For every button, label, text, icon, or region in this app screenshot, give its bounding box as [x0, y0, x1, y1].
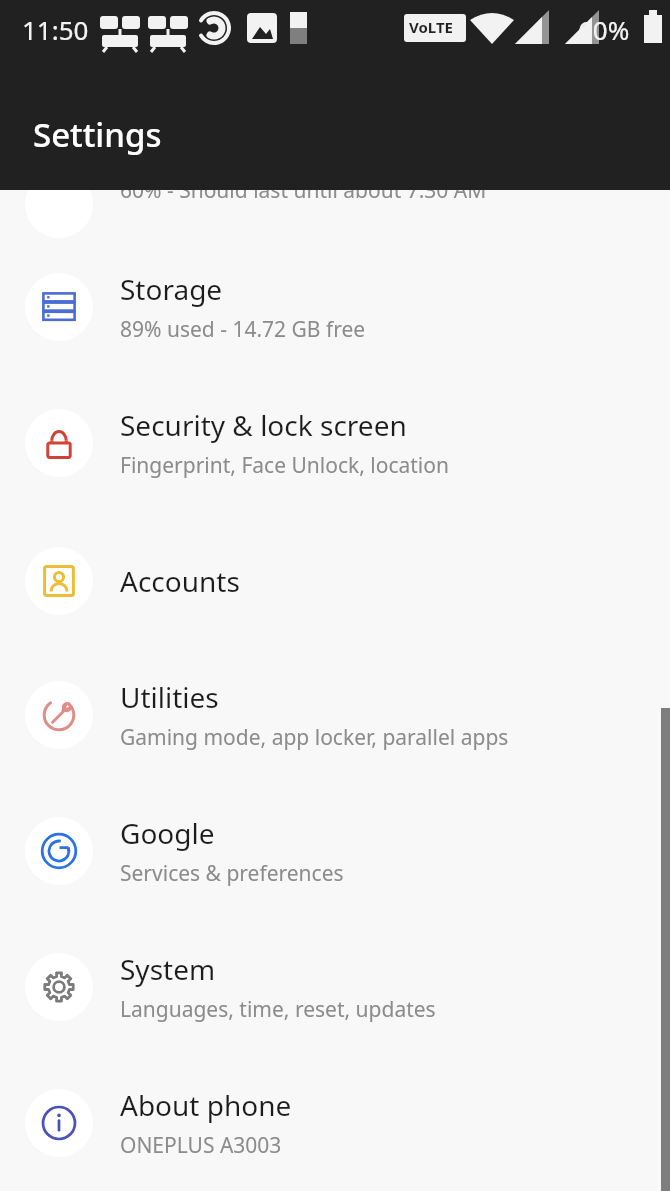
staticText: ONEPLUS A3003 — [120, 1131, 282, 1160]
staticText: 89% used - 14.72 GB free — [120, 315, 366, 344]
staticText: 60% — [578, 12, 630, 47]
staticText: Security & lock screen — [120, 406, 407, 444]
staticText: Accounts — [120, 562, 240, 600]
staticText: System — [120, 950, 216, 988]
other: Storage — [39, 287, 79, 327]
staticText: Gaming mode, app locker, parallel apps — [120, 723, 509, 752]
staticText: Fingerprint, Face Unlock, location — [120, 451, 449, 480]
staticText: About phone — [120, 1086, 292, 1124]
other: Utilities — [39, 695, 79, 735]
other: Accounts — [39, 561, 79, 601]
staticText: VoLTE — [409, 17, 453, 37]
other: About phone — [39, 1103, 79, 1143]
button[interactable]: Google — [0, 784, 670, 918]
button[interactable]: Accounts — [0, 514, 670, 648]
staticText: Utilities — [120, 678, 219, 716]
staticText: 60% - Should last until about 7:30 AM — [120, 176, 487, 205]
staticText: Services & preferences — [120, 859, 344, 888]
staticText: Languages, time, reset, updates — [120, 995, 436, 1024]
button[interactable]: Utilities — [0, 648, 670, 782]
staticText: 11:50 — [22, 12, 89, 47]
staticText: Google — [120, 814, 215, 852]
other: Security and lock screen — [39, 423, 79, 463]
other: System — [39, 967, 79, 1007]
button[interactable]: System — [0, 920, 670, 1054]
button[interactable]: Security and lock screen — [0, 376, 670, 510]
staticText: Storage — [120, 270, 223, 308]
button[interactable]: Storage — [0, 240, 670, 374]
button[interactable]: About phone — [0, 1056, 670, 1190]
staticText: Settings — [33, 112, 162, 157]
other: Google — [39, 831, 79, 871]
